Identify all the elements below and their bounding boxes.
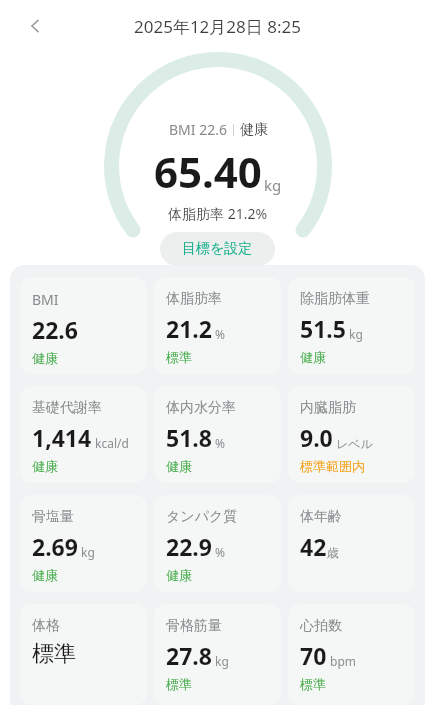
button[interactable]: 骨格筋量	[154, 604, 281, 705]
button[interactable]: 心拍数	[288, 604, 415, 705]
staticText: kcal/d	[95, 435, 129, 451]
staticText: %	[215, 435, 225, 451]
staticText: 2025年12月28日 8:25	[134, 15, 301, 38]
staticText: 27.8	[166, 640, 212, 671]
staticText: kg	[264, 175, 282, 195]
staticText: BMI	[32, 290, 59, 309]
staticText: 51.5	[300, 313, 346, 344]
staticText: 歳	[327, 545, 339, 560]
button[interactable]: 体脂肪率	[154, 277, 281, 374]
staticText: bpm	[330, 653, 356, 669]
staticText: %	[215, 326, 225, 342]
staticText: kg	[81, 544, 95, 560]
staticText: 70	[300, 640, 327, 671]
button[interactable]: Back	[14, 4, 58, 48]
staticText: 健康	[32, 458, 58, 474]
staticText: 体年齢	[300, 508, 342, 526]
button[interactable]: 体内水分率	[154, 386, 281, 483]
button[interactable]: 除脂肪体重	[288, 277, 415, 374]
staticText: 除脂肪体重	[300, 290, 370, 308]
staticText: 健康	[32, 567, 58, 583]
staticText: 健康	[240, 121, 268, 139]
staticText: kg	[349, 326, 363, 342]
staticText: 21.2	[166, 313, 212, 344]
staticText: 標準	[300, 676, 326, 692]
button[interactable]: BMI	[20, 277, 147, 374]
button[interactable]: 内臓脂肪	[288, 386, 415, 483]
staticText: kg	[215, 653, 229, 669]
staticText: 1,414	[32, 422, 92, 453]
button[interactable]: 体年齢	[288, 495, 415, 592]
staticText: 体脂肪率 21.2%	[168, 204, 268, 223]
button[interactable]: タンパク質	[154, 495, 281, 592]
staticText: 健康	[32, 350, 58, 366]
staticText: %	[215, 544, 225, 560]
button[interactable]: 骨塩量	[20, 495, 147, 592]
staticText: 標準範囲内	[300, 458, 365, 474]
button[interactable]: 基礎代謝率	[20, 386, 147, 483]
staticText: 標準	[32, 640, 76, 668]
staticText: レベル	[336, 436, 373, 451]
staticText: 心拍数	[300, 617, 342, 635]
staticText: 9.0	[300, 422, 333, 453]
staticText: 健康	[166, 567, 192, 583]
button[interactable]: 目標を設定	[160, 232, 275, 266]
staticText: 健康	[166, 458, 192, 474]
staticText: 基礎代謝率	[32, 399, 102, 417]
staticText: 体脂肪率	[166, 290, 222, 308]
staticText: 2.69	[32, 531, 78, 562]
staticText: 標準	[166, 349, 192, 365]
staticText: 体格	[32, 617, 60, 635]
staticText: BMI 22.6	[169, 120, 227, 139]
staticText: 骨格筋量	[166, 617, 222, 635]
staticText: 健康	[300, 349, 326, 365]
staticText: 65.40	[154, 143, 262, 200]
staticText: 骨塩量	[32, 508, 74, 526]
button[interactable]: 体格	[20, 604, 147, 705]
staticText: 内臓脂肪	[300, 399, 356, 417]
staticText: 22.6	[32, 314, 78, 345]
staticText: 標準	[166, 676, 192, 692]
staticText: タンパク質	[166, 508, 238, 526]
staticText: 体内水分率	[166, 399, 236, 417]
staticText: 22.9	[166, 531, 212, 562]
staticText: 51.8	[166, 422, 212, 453]
staticText: 目標を設定	[182, 240, 253, 258]
staticText: 42	[300, 531, 327, 562]
